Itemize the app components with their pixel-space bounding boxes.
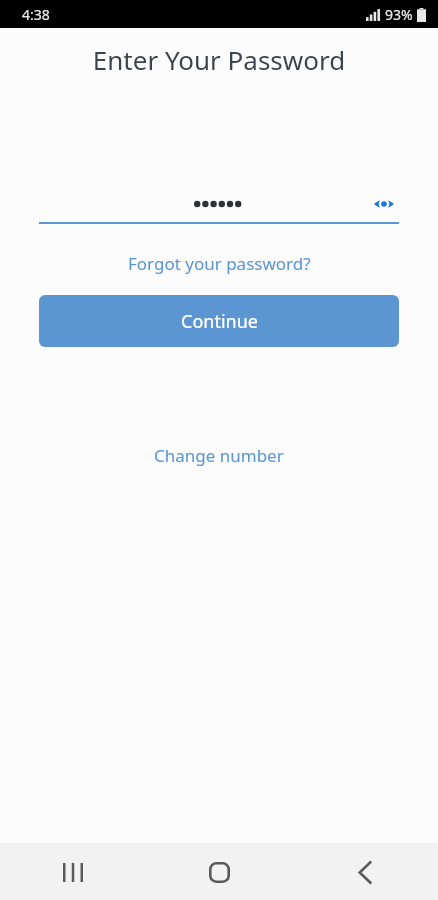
button[interactable]: Show password (369, 189, 399, 219)
staticText: 93% (385, 5, 413, 24)
staticText: Change number (154, 444, 284, 467)
staticText: Enter Your Password (0, 42, 438, 77)
button[interactable]: Continue (39, 295, 399, 347)
staticText: Continue (181, 309, 258, 334)
button[interactable]: Forgot your password? (120, 249, 319, 278)
button[interactable]: Change number (146, 441, 292, 470)
button[interactable]: Recent apps (45, 844, 101, 900)
staticText: Forgot your password? (128, 252, 311, 275)
button[interactable]: Back (337, 844, 393, 900)
button[interactable]: Home (191, 844, 247, 900)
button[interactable]: Show password (39, 184, 399, 224)
staticText: 4:38 (22, 5, 50, 24)
